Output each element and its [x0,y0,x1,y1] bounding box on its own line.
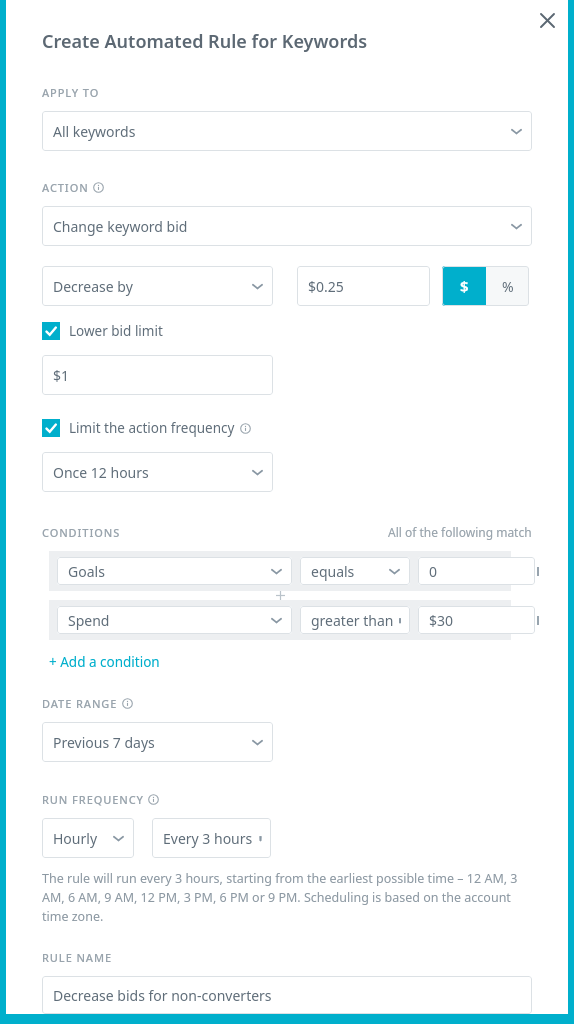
button[interactable]: Hourly [42,818,134,858]
button[interactable]: $ [442,266,486,306]
staticText: greater than [311,611,394,630]
button[interactable]: Change keyword bid [42,206,532,246]
button[interactable]: $30 [418,606,535,634]
staticText: CONDITIONS [42,525,121,540]
staticText: Change keyword bid [53,217,188,236]
button[interactable]: Previous 7 days [42,722,273,762]
button[interactable]: Once 12 hours [42,452,273,492]
staticText: RUN FREQUENCY [42,792,144,807]
button[interactable]: Spend [57,606,292,634]
staticText: $1 [53,366,70,385]
staticText: Decrease by [53,277,133,296]
button[interactable]: equals [300,557,410,585]
button[interactable]: greater than [300,606,410,634]
staticText: DATE RANGE [42,696,118,711]
staticText: $30 [429,611,454,630]
staticText: Decrease bids for non-converters [53,986,272,1005]
staticText: APPLY TO [42,85,100,100]
button[interactable]: Close [532,5,562,35]
staticText: RULE NAME [42,950,112,965]
button[interactable]: + Add a condition [49,653,160,671]
staticText: All keywords [53,122,136,141]
staticText: $0.25 [308,277,344,296]
staticText: Spend [68,611,110,630]
staticText: Goals [68,562,105,581]
staticText: Lower bid limit [69,322,163,340]
button[interactable]: Lower bid limit [42,320,163,342]
staticText: ACTION [42,180,89,195]
staticText: Limit the action frequency [69,419,235,437]
button[interactable]: Goals [57,557,292,585]
staticText: The rule will run every 3 hours, startin… [42,870,532,925]
staticText: Previous 7 days [53,733,155,752]
staticText: % [502,277,514,296]
button[interactable]: 0 [418,557,535,585]
staticText: equals [311,562,355,581]
button[interactable]: $0.25 [297,266,430,306]
button[interactable]: Limit the action frequency [42,417,251,439]
button[interactable]: Every 3 hours [152,818,271,858]
staticText: Hourly [53,829,98,848]
button[interactable]: All keywords [42,111,532,151]
button[interactable]: % [486,266,529,306]
staticText: Create Automated Rule for Keywords [42,29,368,54]
button[interactable]: Decrease bids for non-converters [42,976,532,1014]
button[interactable]: $1 [42,355,273,395]
staticText: Every 3 hours [163,829,253,848]
staticText: Once 12 hours [53,463,149,482]
button[interactable]: Decrease by [42,266,273,306]
staticText: 0 [429,562,438,581]
staticText: $ [460,276,469,296]
staticText: All of the following match [388,524,532,540]
